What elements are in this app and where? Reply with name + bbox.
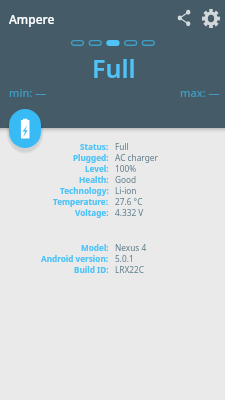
staticText: Voltage: [75, 207, 109, 218]
button[interactable]: Page 3 [106, 38, 124, 47]
staticText: max: — [180, 85, 220, 100]
staticText: 100% [115, 163, 137, 174]
staticText: Health: [79, 174, 109, 185]
staticText: Level: [85, 163, 109, 174]
button[interactable]: Page 1 [70, 38, 88, 47]
staticText: 27.6 °C [115, 196, 143, 207]
staticText: 4.332 V [115, 207, 144, 218]
button[interactable]: Settings [199, 6, 223, 30]
staticText: Model: [81, 242, 109, 253]
staticText: 5.0.1 [115, 253, 134, 264]
staticText: Ampere [9, 11, 55, 27]
staticText: Li-ion [115, 185, 137, 196]
staticText: LRX22C [115, 264, 145, 275]
staticText: Temperature: [53, 196, 109, 207]
staticText: Technology: [60, 185, 109, 196]
staticText: Plugged: [73, 152, 109, 163]
button[interactable]: Page 4 [124, 38, 142, 47]
button[interactable]: Share [172, 6, 196, 30]
button[interactable]: Refresh measurement [9, 109, 41, 148]
staticText: Full [115, 141, 129, 152]
button[interactable]: Page 5 [142, 38, 160, 47]
staticText: Nexus 4 [115, 242, 147, 253]
staticText: Full [92, 51, 136, 85]
staticText: Build ID: [74, 264, 109, 275]
staticText: min: — [9, 85, 47, 100]
staticText: AC charger [115, 152, 158, 163]
button[interactable]: Page 2 [88, 38, 106, 47]
staticText: Android version: [41, 253, 109, 264]
staticText: Good [115, 174, 137, 185]
staticText: Status: [80, 141, 109, 152]
